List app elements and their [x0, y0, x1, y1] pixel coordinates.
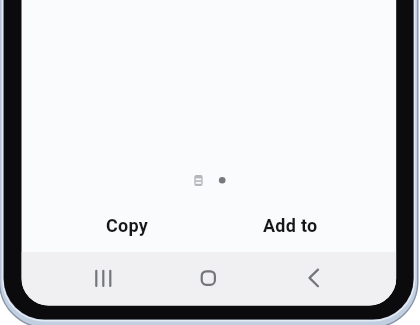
- button[interactable]: Add to: [257, 206, 323, 244]
- staticText: Add to: [263, 215, 318, 236]
- button[interactable]: [188, 258, 228, 298]
- staticText: Copy: [106, 215, 149, 236]
- button[interactable]: Copy: [94, 206, 160, 244]
- button[interactable]: [293, 258, 333, 298]
- button[interactable]: [83, 258, 123, 298]
